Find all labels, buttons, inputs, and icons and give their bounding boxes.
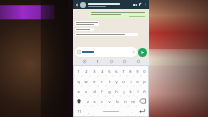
button[interactable]: Space bbox=[93, 106, 128, 116]
staticText: z bbox=[87, 99, 89, 104]
staticText: 9 bbox=[136, 69, 139, 74]
button[interactable]: Keyboard tool 5 bbox=[136, 59, 141, 64]
staticText: d bbox=[93, 89, 96, 94]
button[interactable]: 0 bbox=[141, 66, 148, 76]
button[interactable]: ?1 bbox=[74, 106, 85, 116]
button[interactable]: Call bbox=[139, 3, 143, 7]
button[interactable]: Back bbox=[75, 3, 79, 7]
button[interactable]: d bbox=[90, 86, 98, 96]
button[interactable]: y bbox=[113, 76, 120, 86]
button[interactable]: e bbox=[90, 76, 98, 86]
button[interactable]: o bbox=[134, 76, 141, 86]
button[interactable] bbox=[75, 28, 94, 31]
button[interactable]: ñ bbox=[141, 86, 148, 96]
button[interactable]: a bbox=[74, 86, 82, 96]
button[interactable]: 1 bbox=[74, 66, 82, 76]
staticText: 8 bbox=[129, 69, 132, 74]
staticText: t bbox=[109, 79, 111, 84]
staticText: l bbox=[137, 89, 139, 94]
staticText: b bbox=[116, 99, 119, 104]
button[interactable]: b bbox=[113, 96, 121, 106]
staticText: p bbox=[143, 79, 146, 84]
button[interactable]: More options bbox=[144, 3, 147, 6]
staticText: ?1 bbox=[77, 109, 82, 114]
button[interactable]: g bbox=[106, 86, 113, 96]
staticText: w bbox=[84, 79, 88, 84]
button[interactable]: Enter bbox=[136, 106, 148, 116]
staticText: u bbox=[122, 79, 125, 84]
button[interactable]: Contact photo bbox=[80, 2, 86, 8]
button[interactable]: 2 bbox=[82, 66, 90, 76]
button[interactable]: x bbox=[91, 96, 98, 106]
button[interactable]: , bbox=[85, 106, 93, 116]
button[interactable]: Emoji bbox=[75, 47, 137, 57]
button[interactable]: w bbox=[82, 76, 90, 86]
button[interactable]: c bbox=[98, 96, 105, 106]
button[interactable]: i bbox=[127, 76, 134, 86]
staticText: k bbox=[129, 89, 132, 94]
staticText: 0 bbox=[143, 69, 146, 74]
button[interactable]: 4 bbox=[98, 66, 106, 76]
staticText: . bbox=[131, 109, 133, 114]
button[interactable]: 6 bbox=[113, 66, 120, 76]
staticText: 3 bbox=[93, 69, 96, 74]
staticText: 7 bbox=[122, 69, 125, 74]
button[interactable]: Send bbox=[138, 48, 147, 57]
staticText: ñ bbox=[143, 89, 146, 94]
button[interactable]: v bbox=[105, 96, 113, 106]
button[interactable]: h bbox=[113, 86, 120, 96]
button[interactable] bbox=[75, 21, 99, 26]
button[interactable]: Keyboard tool 1 bbox=[82, 59, 87, 64]
button[interactable]: l bbox=[134, 86, 141, 96]
button[interactable]: 3 bbox=[90, 66, 98, 76]
button[interactable]: f bbox=[98, 86, 106, 96]
button[interactable]: n bbox=[121, 96, 129, 106]
staticText: 1 bbox=[77, 69, 80, 74]
button[interactable]: Keyboard tool 4 bbox=[122, 59, 127, 64]
button[interactable]: Keyboard tool 2 bbox=[95, 59, 100, 64]
button[interactable]: 8 bbox=[127, 66, 134, 76]
staticText: s bbox=[85, 89, 87, 94]
staticText: v bbox=[108, 99, 111, 104]
staticText: i bbox=[130, 79, 132, 84]
button[interactable]: t bbox=[106, 76, 113, 86]
staticText: j bbox=[123, 89, 125, 94]
staticText: m bbox=[131, 99, 135, 104]
staticText: f bbox=[101, 89, 103, 94]
button[interactable]: Video call bbox=[133, 3, 137, 7]
button[interactable]: 5 bbox=[106, 66, 113, 76]
button[interactable]: u bbox=[120, 76, 127, 86]
staticText: , bbox=[88, 109, 90, 114]
other: Attach bbox=[132, 51, 135, 54]
staticText: q bbox=[77, 79, 80, 84]
staticText: g bbox=[108, 89, 111, 94]
staticText: h bbox=[115, 89, 118, 94]
button[interactable]: p bbox=[141, 76, 148, 86]
button[interactable]: Shift bbox=[74, 96, 84, 106]
staticText: 5 bbox=[108, 69, 111, 74]
button[interactable]: m bbox=[129, 96, 137, 106]
button[interactable]: q bbox=[74, 76, 82, 86]
button[interactable] bbox=[89, 11, 147, 18]
staticText: a bbox=[77, 89, 80, 94]
button[interactable]: k bbox=[127, 86, 134, 96]
button[interactable] bbox=[75, 33, 138, 36]
other: Emoji bbox=[77, 50, 81, 54]
staticText: 6 bbox=[115, 69, 118, 74]
staticText: y bbox=[115, 79, 118, 84]
staticText: e bbox=[93, 79, 96, 84]
button[interactable]: 7 bbox=[120, 66, 127, 76]
staticText: n bbox=[124, 99, 127, 104]
button[interactable]: z bbox=[84, 96, 91, 106]
button[interactable]: 9 bbox=[134, 66, 141, 76]
staticText: x bbox=[93, 99, 96, 104]
button[interactable]: s bbox=[82, 86, 90, 96]
button[interactable]: j bbox=[120, 86, 127, 96]
staticText: 2 bbox=[85, 69, 88, 74]
button[interactable]: Backspace bbox=[137, 96, 148, 106]
button[interactable]: Keyboard tool 3 bbox=[109, 59, 114, 64]
staticText: 4 bbox=[101, 69, 104, 74]
staticText: c bbox=[101, 99, 103, 104]
button[interactable]: r bbox=[98, 76, 106, 86]
